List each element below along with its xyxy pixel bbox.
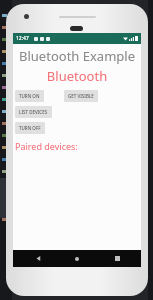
button[interactable]: TURN ON: [15, 90, 44, 102]
button[interactable]: Home: [62, 250, 92, 267]
staticText: GET VISIBLE: [68, 93, 94, 99]
staticText: Paired devices:: [15, 140, 78, 152]
staticText: 12:47: [16, 35, 29, 42]
staticText: Bluetooth Example: [13, 47, 141, 65]
button[interactable]: LIST DEVICES: [15, 106, 52, 118]
button[interactable]: Back: [23, 250, 53, 267]
staticText: TURN OFF: [19, 125, 41, 131]
button[interactable]: Recent apps: [102, 250, 132, 267]
button[interactable]: GET VISIBLE: [64, 90, 98, 102]
button[interactable]: TURN OFF: [15, 122, 45, 134]
staticText: TURN ON: [19, 93, 40, 99]
staticText: LIST DEVICES: [19, 109, 48, 115]
staticText: Bluetooth: [13, 67, 141, 85]
